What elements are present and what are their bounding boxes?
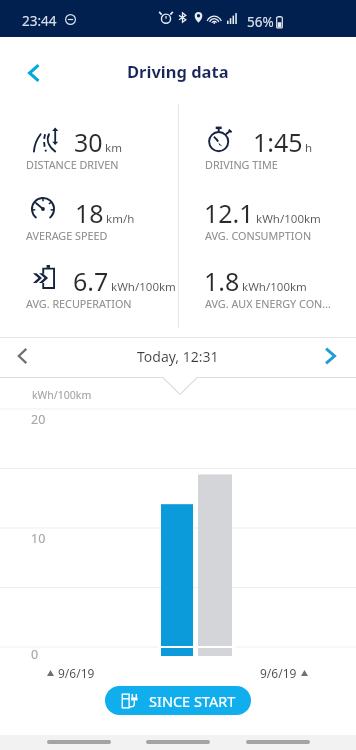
staticText: 9/6/19 [260,665,297,681]
staticText: kWh/100km [32,388,92,402]
staticText: kWh/100km [256,211,321,227]
button[interactable]: SINCE START [105,686,251,715]
staticText: Today, 12:31 [137,347,219,366]
staticText: 0 [31,646,39,663]
button[interactable]: Back [20,59,48,87]
staticText: 30 [74,125,103,159]
button[interactable]: Back [246,740,310,744]
staticText: AVG. AUX ENERGY CON… [205,296,331,311]
staticText: km [105,140,122,156]
button[interactable]: Next day [316,342,344,370]
staticText: DRIVING TIME [205,157,278,172]
staticText: AVG. CONSUMPTION [205,228,312,243]
staticText: km/h [106,211,135,227]
staticText: 1.8 [204,264,240,298]
staticText: 9/6/19 [58,665,95,681]
staticText: Driving data [127,60,229,82]
button[interactable]: Home [146,740,210,744]
staticText: SINCE START [149,691,236,711]
staticText: 6.7 [73,264,109,298]
staticText: DISTANCE DRIVEN [26,157,119,172]
staticText: AVG. RECUPERATION [26,296,132,311]
button[interactable]: Previous day [9,342,37,370]
staticText: kWh/100km [111,279,176,295]
staticText: 1:45 [253,125,303,159]
staticText: 10 [31,530,46,547]
staticText: 23:44 [22,12,57,30]
button[interactable]: Recents [47,740,111,744]
staticText: kWh/100km [242,279,307,295]
staticText: 12.1 [204,196,254,230]
staticText: h [305,140,313,156]
staticText: 18 [75,196,104,230]
staticText: 56% [247,13,274,31]
staticText: AVERAGE SPEED [26,228,108,243]
staticText: 20 [31,411,46,428]
